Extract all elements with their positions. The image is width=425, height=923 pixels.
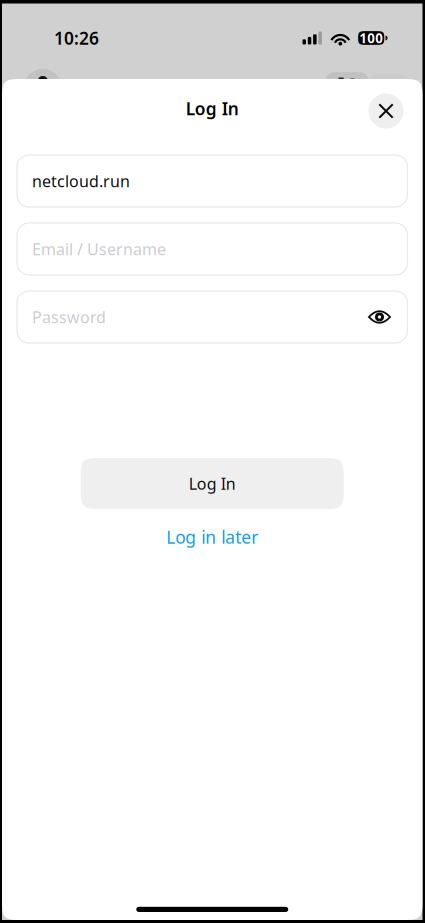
- button[interactable]: Show password: [364, 306, 394, 328]
- staticText: 100: [359, 29, 383, 47]
- staticText: netcloud.run: [32, 170, 130, 192]
- staticText: Email / Username: [32, 238, 166, 260]
- staticText: Log In: [189, 473, 236, 494]
- staticText: Log in later: [166, 525, 258, 548]
- button[interactable]: Log In: [81, 458, 344, 509]
- button[interactable]: Close: [368, 93, 403, 128]
- staticText: Password: [32, 306, 106, 328]
- button[interactable]: Log in later: [142, 509, 282, 565]
- staticText: 10:26: [54, 26, 99, 49]
- staticText: Log In: [186, 97, 239, 120]
